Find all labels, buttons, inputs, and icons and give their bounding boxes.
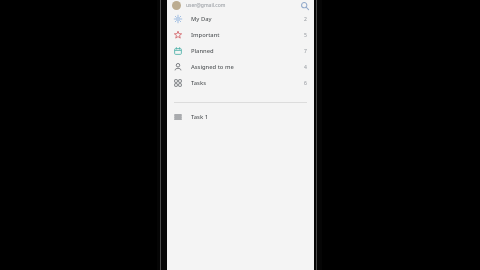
button[interactable]: user@gmail.com bbox=[167, 0, 314, 11]
staticText: Assigned to me bbox=[191, 63, 234, 71]
button[interactable]: Task 1 bbox=[167, 109, 314, 124]
button[interactable]: Search bbox=[299, 0, 311, 11]
staticText: Planned bbox=[191, 47, 214, 55]
button[interactable]: Tasks bbox=[167, 75, 314, 91]
staticText: Task 1 bbox=[191, 113, 208, 121]
staticText: Important bbox=[191, 31, 220, 39]
button[interactable]: Assigned to me bbox=[167, 59, 314, 75]
staticText: My Day bbox=[191, 15, 212, 23]
staticText: 4 bbox=[304, 64, 307, 71]
staticText: 6 bbox=[304, 80, 307, 87]
staticText: Tasks bbox=[191, 79, 206, 87]
staticText: 2 bbox=[304, 16, 307, 23]
staticText: 5 bbox=[304, 32, 307, 39]
staticText: user@gmail.com bbox=[186, 2, 226, 9]
staticText: 7 bbox=[304, 48, 307, 55]
button[interactable]: Important bbox=[167, 27, 314, 43]
button[interactable]: Planned bbox=[167, 43, 314, 59]
button[interactable]: My Day bbox=[167, 11, 314, 27]
